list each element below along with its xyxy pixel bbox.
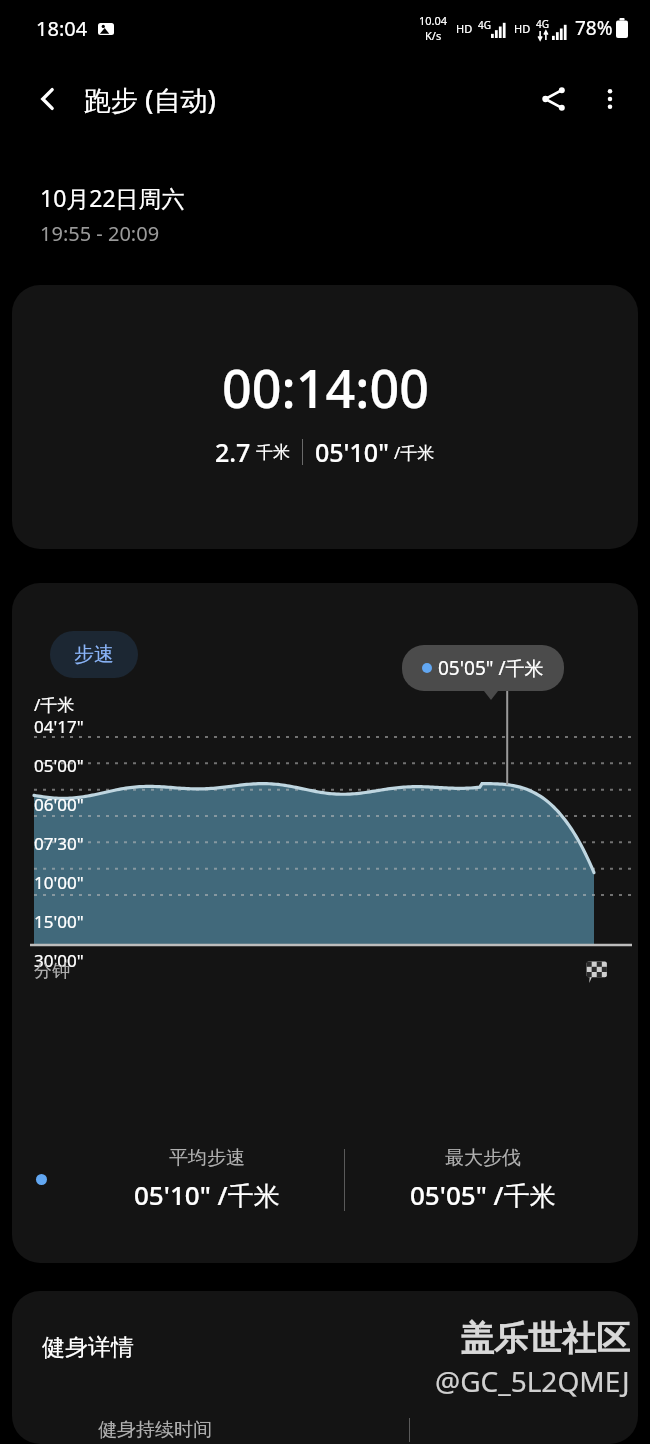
staticText: 分钟 [34,960,70,983]
staticText: 05'05" /千米 [410,1177,556,1213]
staticText: 05'05" /千米 [438,655,544,681]
staticText: 00:14:00 [222,352,429,423]
staticText: 06'00" [34,793,84,816]
staticText: 05'00" [34,754,84,777]
staticText: 04'17" [34,715,84,738]
staticText: /千米 [394,441,435,464]
staticText: 盖乐世社区 [460,1317,630,1360]
staticText: 78% [575,15,613,41]
staticText: 千米 [256,442,290,463]
staticText: 4G [478,18,491,32]
button[interactable]: More options [582,71,638,127]
staticText: 步速 [74,642,114,667]
staticText: 05'10" /千米 [134,1177,280,1213]
staticText: @GC_5L2QMEJ [435,1362,630,1400]
staticText: 05'10" [315,435,389,469]
staticText: 10月22日周六 [40,182,185,213]
staticText: HD [514,21,531,36]
staticText: 10'00" [34,871,84,894]
staticText: 4G [536,17,549,31]
staticText: 15'00" [34,910,84,933]
staticText: 健身持续时间 [98,1418,212,1442]
staticText: 10.04 [419,13,448,28]
staticText: 07'30" [34,832,84,855]
staticText: 健身详情 [42,1333,134,1362]
button[interactable]: 00:14:00 [12,285,638,549]
staticText: HD [456,21,473,36]
staticText: 跑步 (自动) [84,81,216,118]
staticText: 30'00" [34,949,84,972]
staticText: 平均步速 [169,1146,245,1170]
staticText: 18:04 [36,15,88,42]
button[interactable]: Back [22,73,74,125]
staticText: 19:55 - 20:09 [40,220,160,247]
button[interactable]: Share [526,71,582,127]
staticText: 最大步伐 [445,1146,521,1170]
staticText: 2.7 [215,435,251,469]
other: Finish [584,959,610,985]
button[interactable]: 步速 [50,631,138,678]
staticText: K/s [425,28,442,43]
staticText: /千米 [34,693,75,716]
